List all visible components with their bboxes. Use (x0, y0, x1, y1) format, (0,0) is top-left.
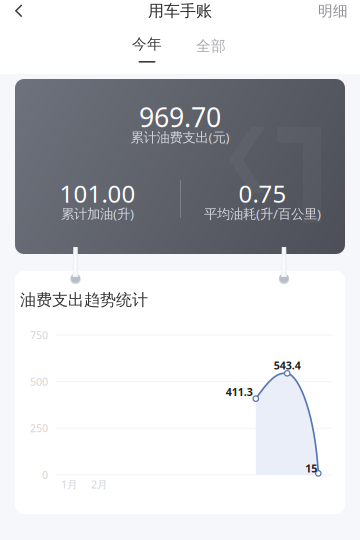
button[interactable]: 全部 (185, 37, 237, 69)
staticText: 1月 (61, 477, 78, 491)
staticText: 500 (30, 374, 48, 389)
staticText: 969.70 (139, 99, 221, 135)
staticText: 累计油费支出(元) (130, 128, 229, 146)
staticText: 0.75 (238, 178, 286, 209)
staticText: 250 (30, 421, 48, 435)
staticText: 15 (305, 461, 317, 476)
staticText: 全部 (196, 37, 226, 55)
staticText: 今年 (132, 35, 162, 53)
staticText: 累计加油(升) (61, 205, 134, 222)
staticText: 750 (30, 328, 48, 342)
staticText: 0 (42, 468, 48, 482)
staticText: 平均油耗(升/百公里) (204, 205, 321, 222)
staticText: 油费支出趋势统计 (20, 290, 148, 310)
staticText: 101.00 (59, 178, 135, 209)
staticText: 411.3 (226, 385, 253, 399)
staticText: 543.4 (274, 358, 301, 372)
staticText: 2月 (91, 477, 108, 491)
button[interactable]: Back (2, 0, 36, 22)
button[interactable]: 明细 (310, 0, 356, 22)
staticText: 明细 (318, 2, 348, 20)
staticText: 用车手账 (148, 1, 212, 21)
button[interactable]: 今年 (121, 37, 173, 69)
